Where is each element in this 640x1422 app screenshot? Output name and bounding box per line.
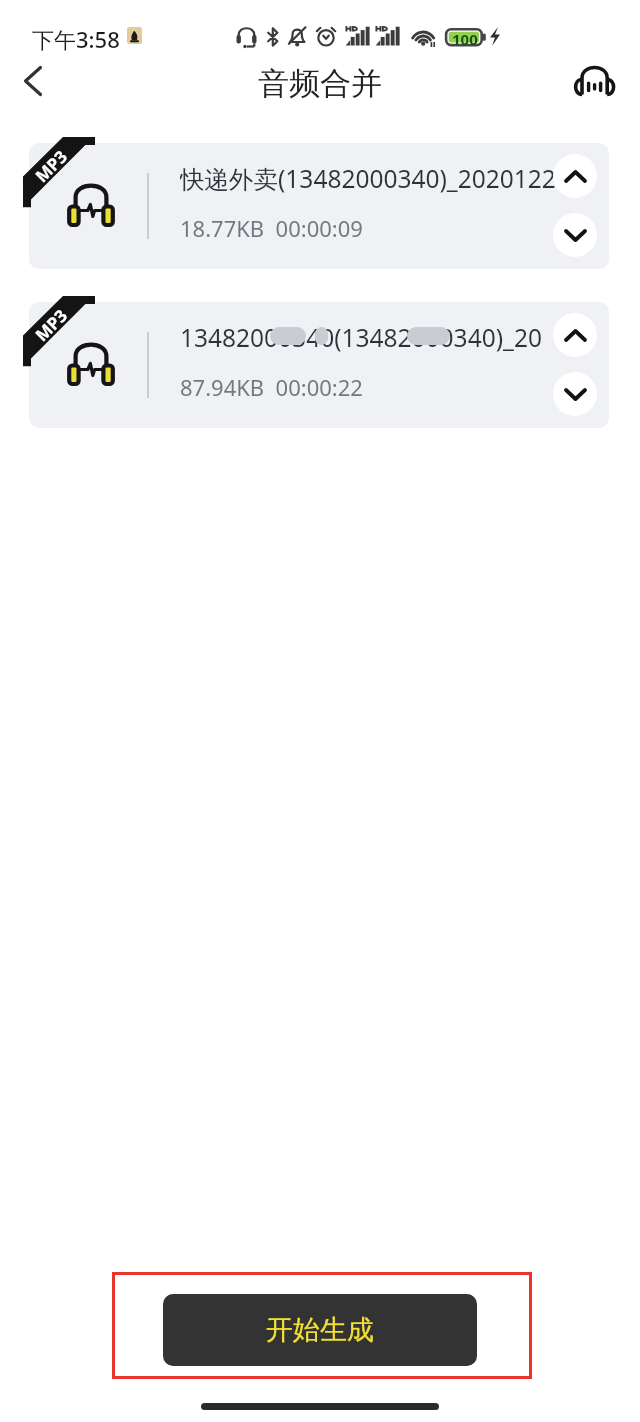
button[interactable]: 开始生成 [163,1294,477,1366]
staticText: 下午3:58 [32,24,120,54]
staticText: 13482000340(13482000340)_20 [180,321,542,353]
button[interactable]: Back [4,52,62,110]
staticText: 音频合并 [258,64,382,103]
button[interactable]: Headphones [566,51,624,109]
staticText: MP3 [30,304,72,346]
button[interactable]: 13482000340(13482000340)_20 [29,302,609,428]
button[interactable]: Move down [553,213,597,257]
button[interactable]: Move up [553,313,597,357]
staticText: 18.77KB 00:00:09 [180,213,363,243]
button[interactable]: Move up [553,154,597,198]
staticText: 87.94KB 00:00:22 [180,372,363,402]
button[interactable]: 快递外卖(13482000340)_2020122 [29,143,609,269]
staticText: 快递外卖(13482000340)_2020122 [180,162,555,194]
staticText: MP3 [30,145,72,187]
staticText: 开始生成 [266,1313,374,1347]
staticText: 100 [452,29,478,49]
button[interactable]: Move down [553,372,597,416]
